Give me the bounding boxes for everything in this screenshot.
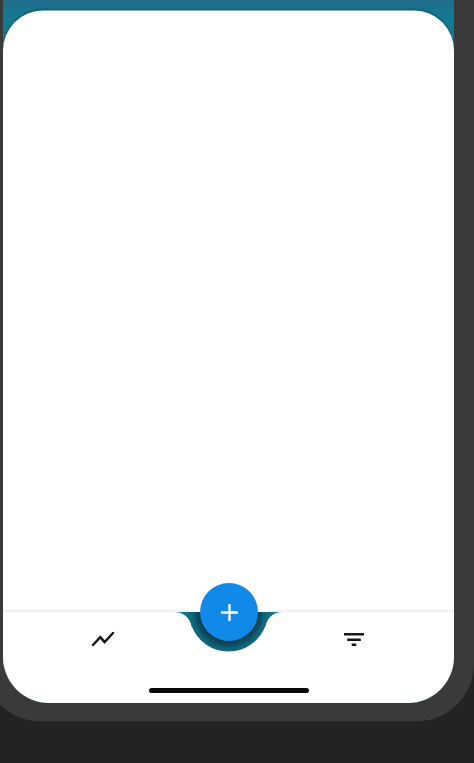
button[interactable]: Add [200, 583, 258, 641]
button[interactable]: Filter [330, 615, 378, 663]
button[interactable]: Statistics [79, 615, 127, 663]
